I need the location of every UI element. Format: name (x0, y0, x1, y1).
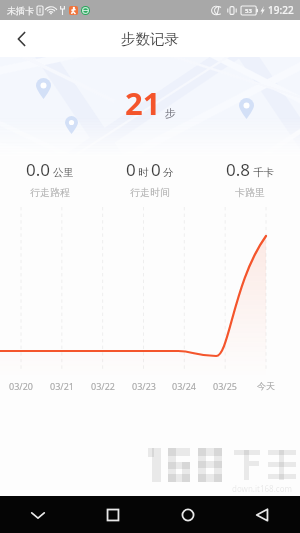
staticText: 步数记录 (121, 30, 179, 48)
staticText: 53 (245, 7, 252, 15)
button[interactable]: Hide keyboard (0, 496, 75, 533)
staticText: 03/21 (42, 380, 82, 392)
staticText: 千卡 (253, 166, 274, 179)
staticText: 分 (163, 166, 174, 179)
button[interactable]: Back (225, 496, 300, 533)
staticText: 行走路程 (30, 186, 70, 199)
staticText: 公里 (53, 166, 74, 179)
staticText: 行走时间 (130, 186, 170, 199)
staticText: 03/24 (164, 380, 204, 392)
staticText: 步 (165, 106, 176, 120)
staticText: 今天 (246, 380, 286, 391)
button[interactable]: 0 (100, 158, 200, 199)
staticText: 03/22 (83, 380, 123, 392)
staticText: 03/25 (205, 380, 245, 392)
button[interactable]: 0.0 (0, 158, 100, 199)
staticText: down.it168.com (232, 483, 292, 494)
button[interactable]: Back (0, 20, 42, 57)
staticText: 19:22 (268, 3, 294, 17)
button[interactable]: 0.8 (200, 158, 300, 199)
staticText: 03/23 (124, 380, 164, 392)
staticText: 0.8 (226, 158, 251, 181)
staticText: 0 (151, 158, 161, 181)
staticText: 03/20 (1, 380, 41, 392)
button[interactable]: Recents (75, 496, 150, 533)
staticText: 0 (126, 158, 136, 181)
staticText: 卡路里 (235, 186, 265, 199)
button[interactable]: Home (150, 496, 225, 533)
staticText: 时 (138, 166, 149, 179)
staticText: 0.0 (26, 158, 51, 181)
staticText: 21 (125, 82, 161, 124)
staticText: 未插卡 (7, 5, 34, 16)
